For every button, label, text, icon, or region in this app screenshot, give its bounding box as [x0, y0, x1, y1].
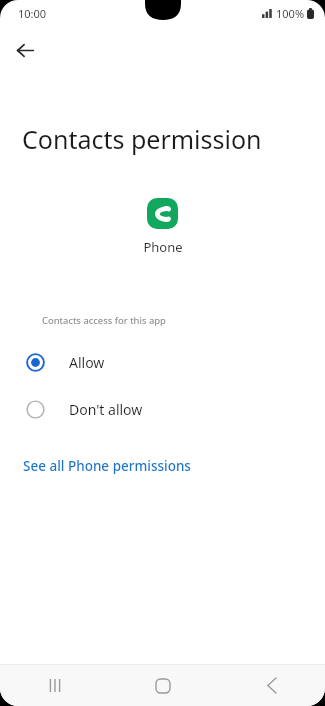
staticText: Contacts access for this app [42, 314, 309, 327]
button[interactable]: See all Phone permissions [0, 453, 325, 479]
staticText: Allow [69, 353, 105, 372]
button[interactable]: Back [9, 34, 41, 66]
staticText: Contacts permission [22, 122, 311, 156]
button[interactable]: Allow [0, 339, 325, 386]
button[interactable]: Back [217, 665, 325, 706]
button[interactable]: Home [109, 665, 217, 706]
staticText: See all Phone permissions [23, 457, 191, 475]
staticText: 100% [276, 6, 305, 21]
staticText: 10:00 [18, 6, 47, 21]
staticText: Phone [143, 238, 183, 256]
staticText: Don't allow [69, 400, 143, 419]
button[interactable]: Don't allow [0, 386, 325, 433]
button[interactable]: Recent apps [0, 665, 109, 706]
